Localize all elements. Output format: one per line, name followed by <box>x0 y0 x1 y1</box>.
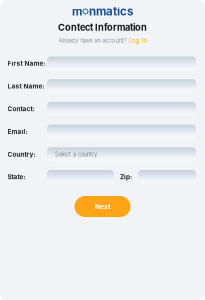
staticText: Contact: <box>8 105 35 113</box>
button[interactable] <box>138 170 196 184</box>
button[interactable] <box>47 125 196 139</box>
staticText: Zip: <box>120 173 132 181</box>
staticText: Next <box>95 202 110 211</box>
button[interactable]: Select a country <box>47 147 196 161</box>
button[interactable]: Next <box>74 196 130 217</box>
staticText: Contect Information <box>58 22 147 33</box>
button[interactable] <box>47 102 196 116</box>
staticText: Last Name: <box>8 82 45 90</box>
button[interactable] <box>47 56 196 70</box>
staticText: Log In <box>128 37 146 44</box>
staticText: Select a country <box>55 151 97 158</box>
staticText: m <box>72 4 82 18</box>
staticText: nmatics <box>89 4 133 18</box>
staticText: State: <box>8 173 26 181</box>
button[interactable] <box>47 170 114 184</box>
staticText: First Name: <box>8 60 46 67</box>
staticText: Country: <box>8 150 36 158</box>
button[interactable] <box>47 79 196 93</box>
staticText: Already have an account? <box>58 37 126 44</box>
staticText: Email: <box>8 128 28 135</box>
button[interactable]: Log In <box>128 37 146 44</box>
